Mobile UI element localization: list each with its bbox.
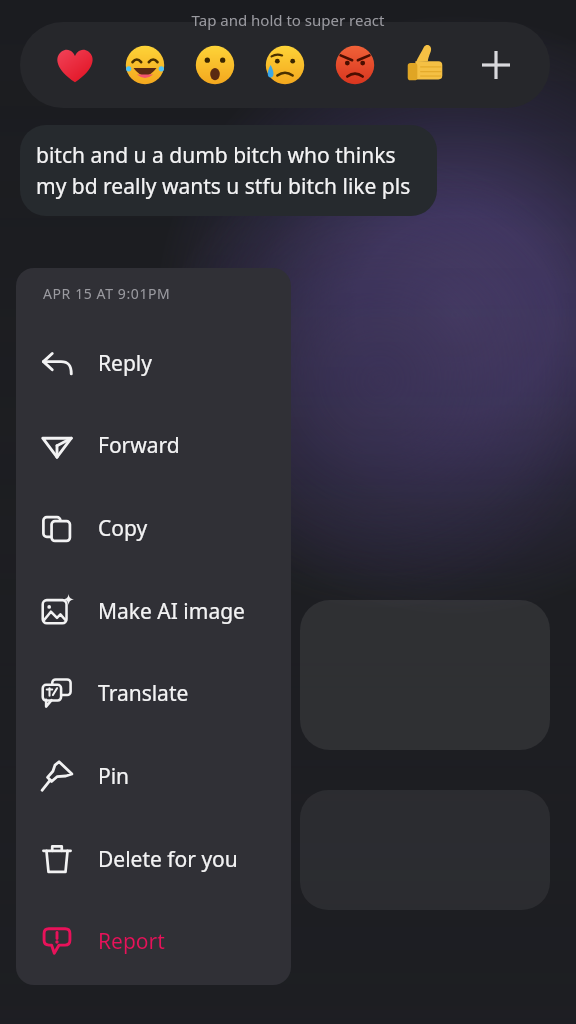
- staticText: Make AI image: [98, 597, 245, 626]
- button[interactable]: Angry reaction: [331, 41, 379, 89]
- button[interactable]: Laugh reaction: [121, 41, 169, 89]
- staticText: bitch and u a dumb bitch who thinks my b…: [36, 141, 421, 200]
- button[interactable]: Heart reaction: [51, 41, 99, 89]
- button[interactable]: Wow reaction: [191, 41, 239, 89]
- staticText: Translate: [98, 679, 189, 708]
- button[interactable]: Translate: [16, 652, 291, 734]
- staticText: Tap and hold to super react: [0, 10, 576, 30]
- staticText: Copy: [98, 514, 148, 543]
- staticText: Reply: [98, 349, 152, 378]
- button[interactable]: Pin: [16, 735, 291, 817]
- button[interactable]: More reactions: [472, 41, 520, 89]
- button[interactable]: Forward: [16, 404, 291, 486]
- staticText: APR 15 AT 9:01PM: [43, 284, 171, 303]
- button[interactable]: Make AI image: [16, 570, 291, 652]
- staticText: Delete for you: [98, 845, 238, 874]
- button[interactable]: Sad reaction: [261, 41, 309, 89]
- button[interactable]: Delete for you: [16, 818, 291, 900]
- staticText: Pin: [98, 762, 130, 791]
- staticText: Forward: [98, 431, 180, 460]
- staticText: Report: [98, 927, 165, 956]
- button[interactable]: bitch and u a dumb bitch who thinks my b…: [20, 125, 437, 216]
- button[interactable]: Copy: [16, 487, 291, 569]
- button[interactable]: Reply: [16, 322, 291, 404]
- button[interactable]: Like reaction: [401, 41, 449, 89]
- button[interactable]: Report: [16, 900, 291, 982]
